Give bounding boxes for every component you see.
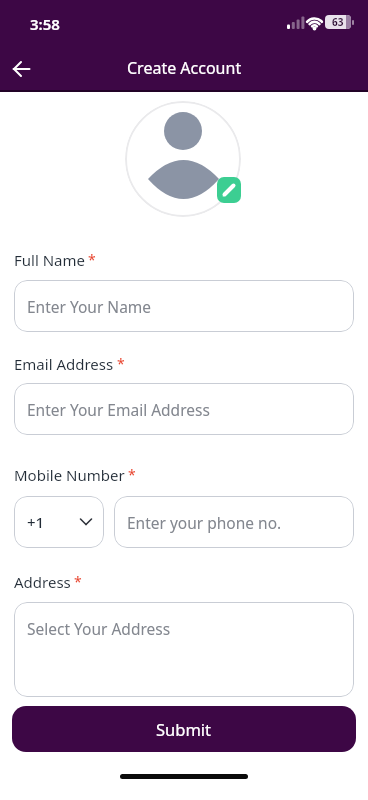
button[interactable]: Enter your phone no. [114,496,354,548]
staticText: Mobile Number [14,465,125,485]
staticText: Enter Your Email Address [27,399,210,420]
staticText: +1 [27,512,45,532]
staticText: Select Your Address [27,618,171,639]
button[interactable] [6,54,36,84]
staticText: Enter Your Name [27,296,152,317]
button[interactable]: Submit [12,706,356,752]
staticText: Email Address [14,354,114,374]
button[interactable]: +1 [14,496,104,548]
staticText: Create Account [127,57,242,79]
button[interactable]: Select Your Address [14,602,354,697]
staticText: Full Name [14,250,85,270]
button[interactable]: Enter Your Email Address [14,383,354,435]
staticText: * [117,354,125,373]
staticText: * [88,250,96,269]
staticText: 63 [332,15,344,29]
button[interactable]: Enter Your Name [14,280,354,332]
button[interactable] [125,101,241,217]
staticText: Enter your phone no. [127,512,282,533]
staticText: Address [14,572,71,592]
staticText: 3:58 [30,14,60,34]
staticText: * [128,465,136,484]
button[interactable] [217,177,241,203]
staticText: Submit [156,718,212,740]
staticText: * [74,572,82,591]
